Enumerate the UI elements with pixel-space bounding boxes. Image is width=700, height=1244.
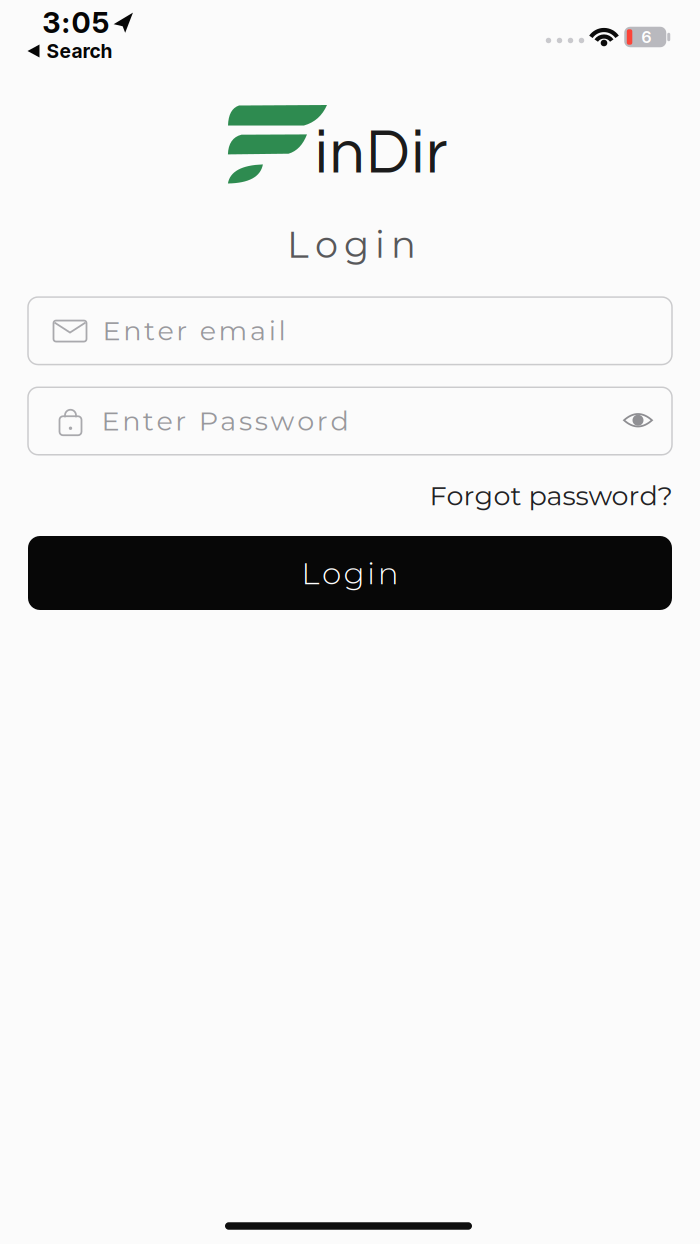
staticText: r: [175, 404, 186, 437]
staticText: r: [176, 314, 187, 347]
staticText: s: [255, 404, 268, 437]
staticText: o: [322, 554, 341, 592]
staticText: r: [317, 404, 328, 437]
button[interactable]: Forgot password?: [429, 479, 672, 512]
button[interactable]: Show password: [623, 412, 653, 429]
staticText: s: [239, 404, 252, 437]
staticText: e: [158, 314, 174, 347]
staticText: n: [122, 404, 140, 437]
staticText: e: [157, 404, 173, 437]
button[interactable]: Search: [27, 39, 112, 63]
staticText: g: [343, 554, 364, 592]
staticText: a: [250, 314, 266, 347]
staticText: E: [102, 314, 120, 347]
staticText: L: [301, 554, 319, 592]
staticText: i: [411, 122, 424, 185]
button[interactable]: Enter Password: [28, 387, 672, 455]
staticText: g: [344, 222, 369, 267]
staticText: Search: [46, 39, 112, 63]
staticText: m: [218, 314, 247, 347]
staticText: d: [330, 404, 348, 437]
staticText: P: [199, 404, 218, 437]
staticText: w: [270, 404, 294, 437]
staticText: i: [315, 122, 328, 185]
staticText: o: [315, 222, 338, 267]
staticText: 0: [72, 5, 91, 40]
button[interactable]: Login: [28, 536, 672, 610]
staticText: 5: [92, 5, 110, 40]
staticText: i: [269, 314, 276, 347]
staticText: t: [143, 404, 154, 437]
staticText: D: [366, 122, 410, 185]
staticText: n: [329, 122, 364, 185]
staticText: o: [297, 404, 314, 437]
staticText: 3: [42, 5, 60, 40]
staticText: t: [144, 314, 155, 347]
button[interactable]: Enter email: [28, 297, 672, 365]
staticText: l: [278, 314, 285, 347]
staticText: e: [200, 314, 216, 347]
staticText: n: [378, 554, 399, 592]
staticText: :: [61, 5, 70, 40]
staticText: Forgot password?: [429, 479, 672, 512]
staticText: n: [123, 314, 141, 347]
staticText: 6: [641, 27, 651, 47]
staticText: a: [220, 404, 236, 437]
staticText: i: [367, 554, 375, 592]
staticText: L: [287, 222, 309, 267]
staticText: n: [391, 222, 416, 267]
staticText: i: [375, 222, 385, 267]
staticText: r: [426, 122, 447, 185]
staticText: E: [101, 404, 119, 437]
